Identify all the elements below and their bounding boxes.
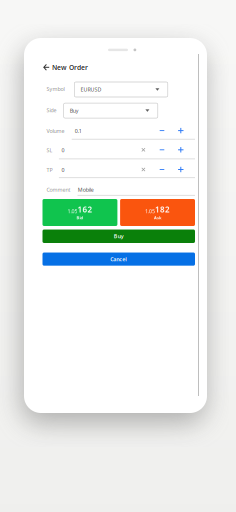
staticText: Bid (76, 215, 83, 220)
staticText: Cancel (110, 256, 127, 263)
button[interactable]: Increase SL (176, 145, 186, 155)
staticText: Symbol (46, 85, 64, 93)
staticText: SL (46, 147, 52, 154)
staticText: 0 (61, 166, 64, 173)
staticText: New Order (52, 63, 88, 72)
staticText: 0 (61, 147, 64, 154)
button[interactable]: Buy (42, 229, 195, 243)
button[interactable]: Increase TP (176, 164, 186, 174)
button[interactable]: Back (43, 63, 88, 71)
staticText: Buy (70, 107, 79, 114)
button[interactable]: Cancel (42, 252, 195, 266)
button[interactable]: Decrease Volume (157, 126, 167, 136)
staticText: EURUSD (80, 86, 101, 93)
button[interactable]: Buy (64, 103, 158, 118)
button[interactable]: EURUSD (74, 82, 168, 97)
staticText: 162 (77, 204, 92, 215)
staticText: 182 (155, 204, 170, 215)
staticText: Side (46, 107, 56, 114)
button[interactable]: 1.05 (120, 199, 195, 226)
staticText: Buy (114, 233, 124, 240)
staticText: 0.1 (75, 127, 82, 134)
staticText: Comment (46, 186, 70, 193)
staticText: Ask (154, 215, 161, 220)
button[interactable]: Clear TP (138, 164, 148, 174)
button[interactable]: 1.05 (42, 199, 117, 226)
staticText: 1.05 (145, 207, 155, 215)
button[interactable]: Increase Volume (176, 126, 186, 136)
button[interactable]: Decrease TP (157, 164, 167, 174)
button[interactable]: Decrease SL (157, 145, 167, 155)
staticText: Volume (46, 127, 64, 134)
staticText: Mobile (78, 186, 94, 193)
staticText: 1.05 (67, 207, 77, 215)
staticText: TP (46, 166, 52, 173)
button[interactable]: Clear SL (138, 145, 148, 155)
